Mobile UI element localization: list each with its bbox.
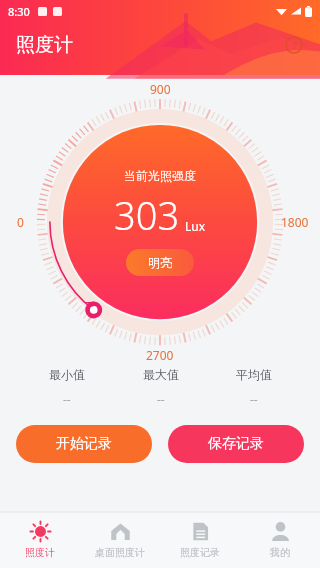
staticText: 303 [114, 189, 180, 241]
staticText: 我的 [270, 546, 290, 559]
button[interactable]: 我的 [240, 512, 320, 568]
staticText: ? [292, 38, 297, 53]
button[interactable]: 明亮 [126, 249, 194, 276]
button[interactable]: Help [280, 31, 308, 59]
staticText: 2700 [146, 347, 174, 363]
staticText: 开始记录 [56, 435, 112, 453]
button[interactable]: 桌面照度计 [80, 512, 160, 568]
staticText: 平均值 [236, 367, 272, 382]
button[interactable]: 照度计 [0, 512, 80, 568]
staticText: -- [157, 391, 165, 407]
staticText: 8:30 [8, 4, 30, 19]
staticText: 900 [150, 81, 171, 97]
staticText: 保存记录 [208, 435, 264, 453]
staticText: 照度计 [25, 546, 55, 559]
staticText: 当前光照强度 [124, 168, 196, 183]
staticText: -- [63, 391, 71, 407]
button[interactable]: 开始记录 [16, 425, 152, 463]
staticText: 照度计 [16, 33, 73, 57]
button[interactable]: 保存记录 [168, 425, 304, 463]
staticText: 桌面照度计 [95, 546, 145, 559]
staticText: 最大值 [143, 367, 179, 382]
staticText: Lux [185, 218, 206, 234]
staticText: -- [250, 391, 258, 407]
staticText: 照度记录 [180, 546, 220, 559]
staticText: 0 [17, 214, 24, 230]
button[interactable]: 照度记录 [160, 512, 240, 568]
staticText: 1800 [281, 214, 309, 230]
staticText: 明亮 [148, 255, 172, 270]
staticText: 最小值 [49, 367, 85, 382]
